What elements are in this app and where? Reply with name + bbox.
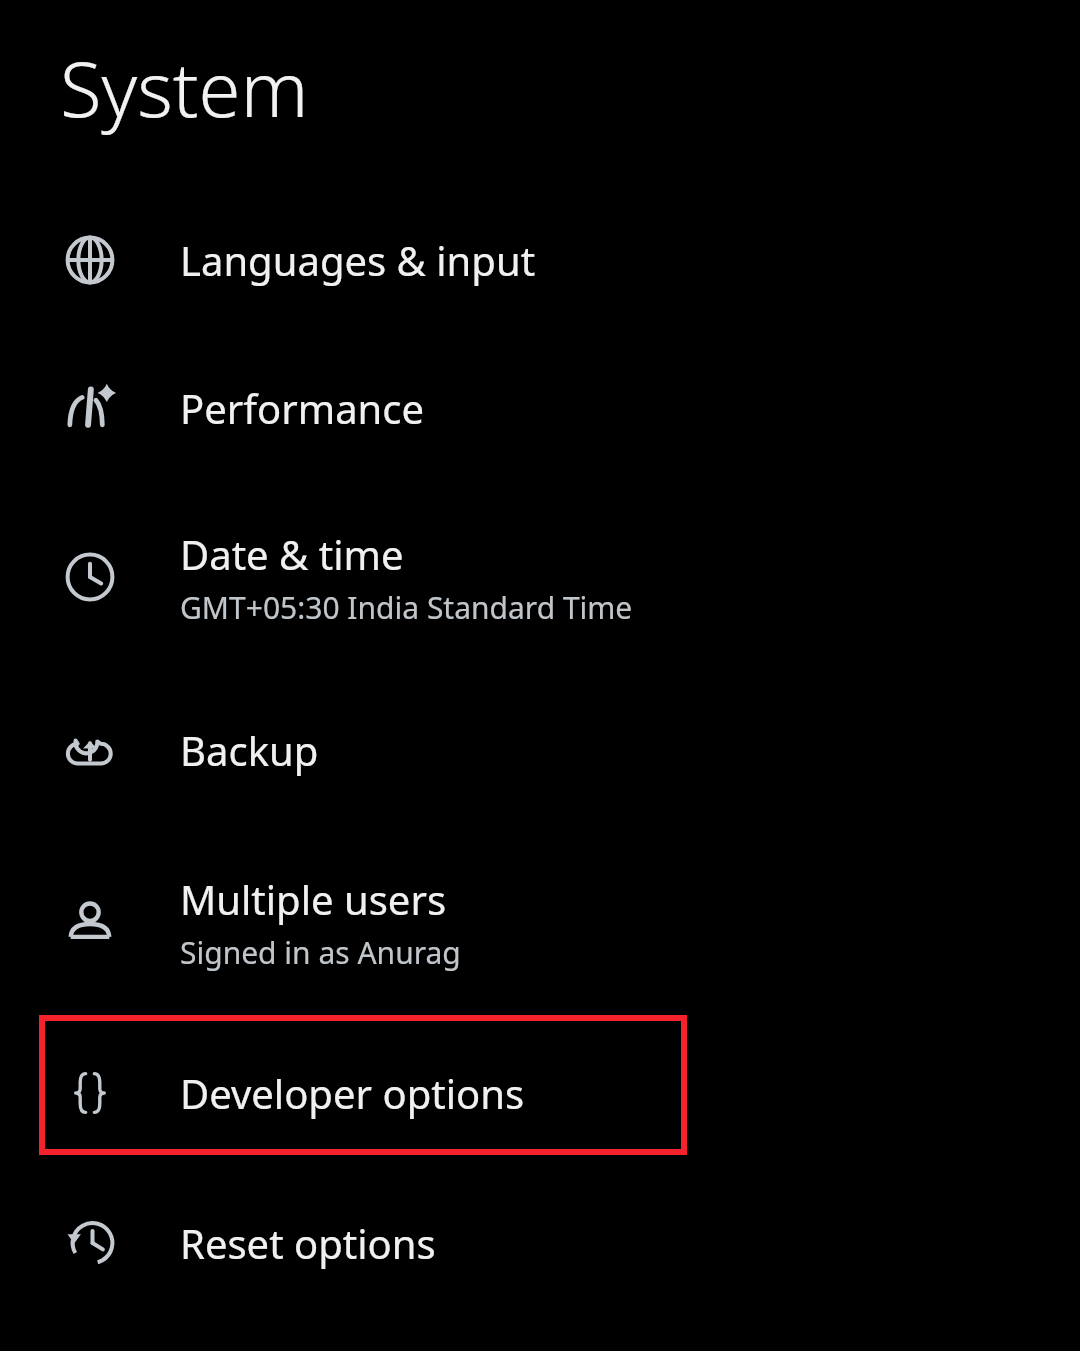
staticText: Reset options xyxy=(180,1216,436,1270)
staticText: Developer options xyxy=(180,1066,525,1120)
staticText: Backup xyxy=(180,723,319,777)
button[interactable]: Backup xyxy=(0,672,1080,827)
button[interactable]: Date & time xyxy=(0,482,1080,672)
staticText: Performance xyxy=(180,381,425,435)
staticText: Date & time xyxy=(180,527,404,581)
button[interactable]: Languages & input xyxy=(0,186,1080,334)
staticText: Multiple users xyxy=(180,872,447,926)
staticText: GMT+05:30 India Standard Time xyxy=(180,587,633,628)
button[interactable]: Performance xyxy=(0,334,1080,482)
staticText: Signed in as Anurag xyxy=(180,932,461,973)
button[interactable]: Multiple users xyxy=(0,827,1080,1017)
staticText: Languages & input xyxy=(180,233,536,287)
button[interactable]: Reset options xyxy=(0,1169,1080,1317)
button[interactable]: Developer options xyxy=(0,1017,1080,1169)
staticText: System xyxy=(60,36,309,140)
